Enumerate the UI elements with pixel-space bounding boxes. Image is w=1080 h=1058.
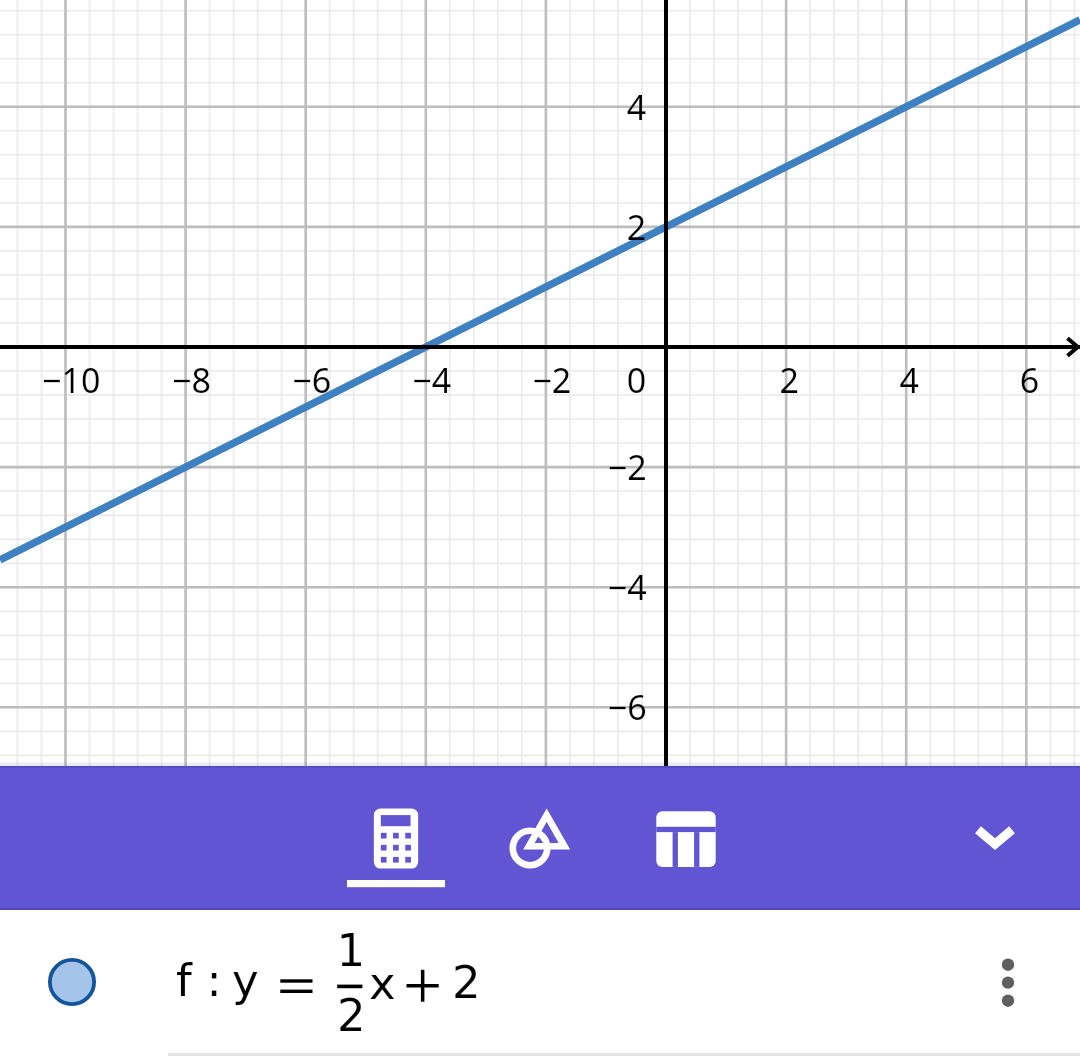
button[interactable]: Table <box>626 766 746 910</box>
button[interactable]: Tools <box>480 766 600 910</box>
button[interactable]: Collapse <box>943 785 1047 889</box>
button[interactable]: More options <box>968 942 1048 1022</box>
button[interactable]: Toggle visibility <box>28 938 116 1026</box>
button[interactable]: Calculator <box>336 766 456 910</box>
button[interactable]: f : y = 1/2 x + 2 <box>0 910 1080 1058</box>
